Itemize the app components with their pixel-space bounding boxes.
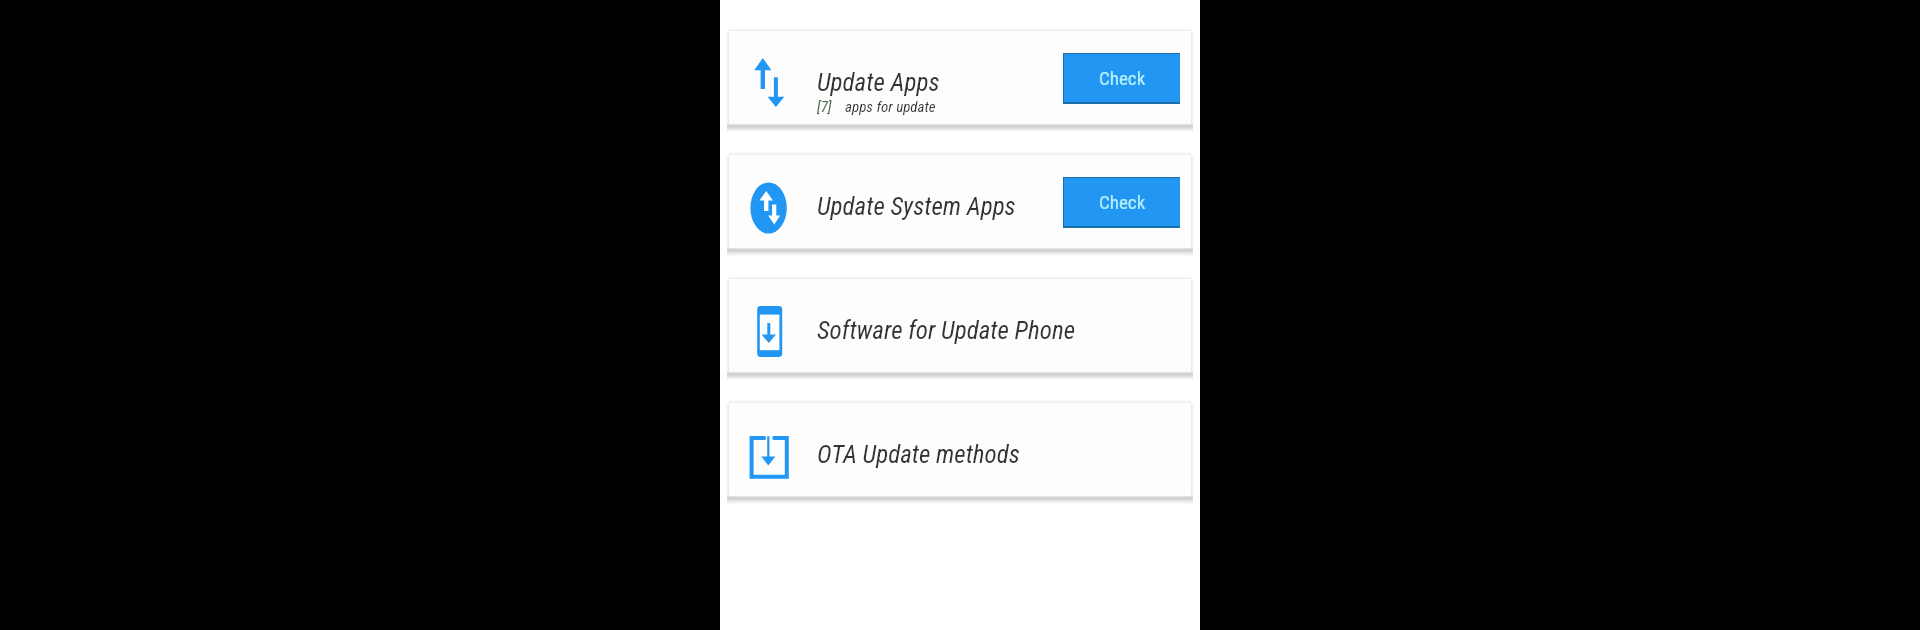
- button[interactable]: OTA update methods: [729, 403, 1191, 496]
- staticText: Update Apps: [817, 68, 940, 97]
- other: OTA update methods: [729, 403, 1191, 496]
- button[interactable]: Check: [1063, 177, 1180, 228]
- staticText: apps for update: [845, 98, 936, 116]
- other: Update apps: [729, 31, 1191, 124]
- staticText: Check: [1099, 191, 1146, 213]
- staticText: OTA Update methods: [817, 440, 1020, 469]
- staticText: Check: [1099, 67, 1146, 89]
- other: Software for update phone: [729, 279, 1191, 372]
- button[interactable]: Update apps: [729, 31, 1191, 124]
- other: Update system apps: [729, 155, 1191, 248]
- staticText: Update System Apps: [817, 192, 1016, 221]
- staticText: [7]: [817, 98, 832, 116]
- button[interactable]: Update system apps: [729, 155, 1191, 248]
- button[interactable]: Check: [1063, 53, 1180, 104]
- button[interactable]: Software for update phone: [729, 279, 1191, 372]
- staticText: Software for Update Phone: [817, 316, 1076, 345]
